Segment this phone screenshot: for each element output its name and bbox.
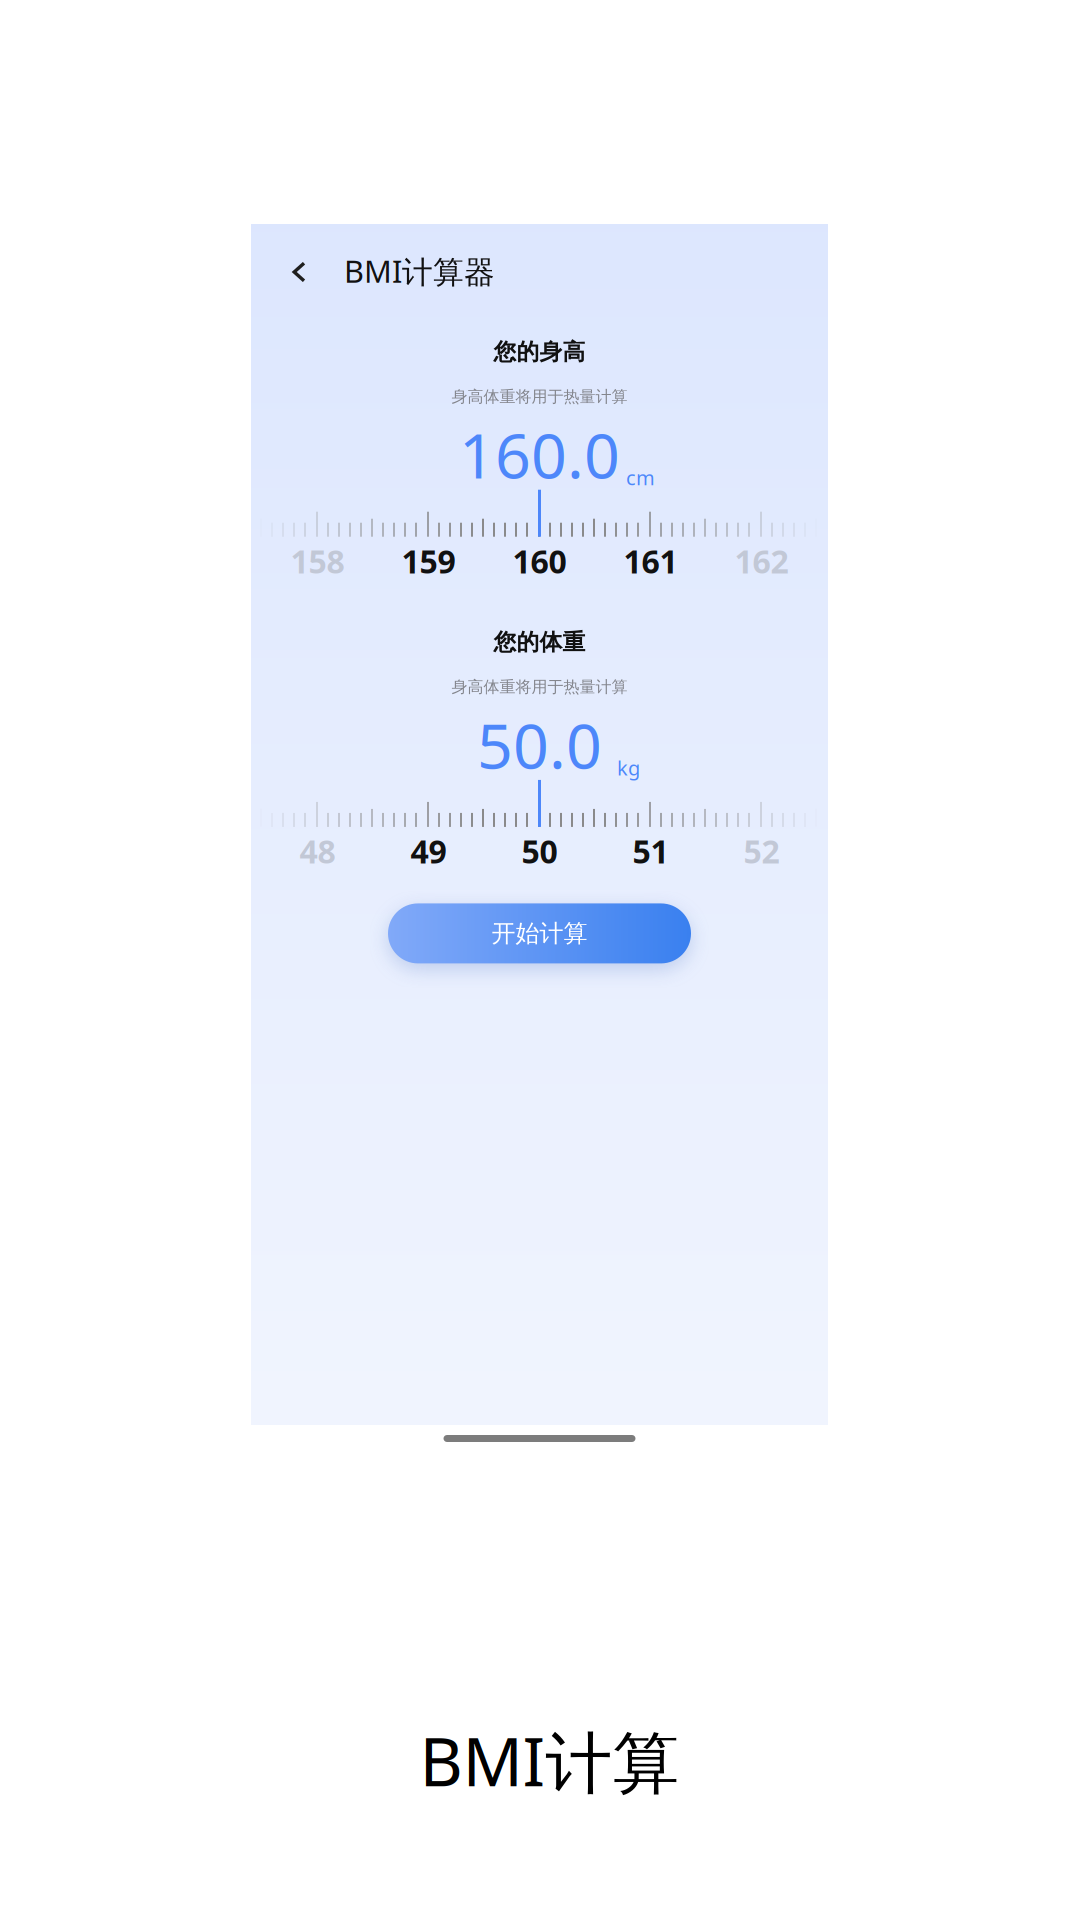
- staticText: 160: [512, 540, 566, 582]
- staticText: 您的体重: [493, 628, 585, 656]
- staticText: 51: [632, 830, 668, 872]
- staticText: BMI计算器: [344, 251, 495, 291]
- staticText: 162: [734, 540, 788, 582]
- staticText: 158: [290, 540, 344, 582]
- staticText: BMI计算: [419, 1716, 679, 1805]
- staticText: 您的身高: [493, 338, 585, 366]
- staticText: 161: [623, 540, 677, 582]
- staticText: 52: [743, 830, 779, 872]
- staticText: 49: [410, 830, 446, 872]
- button[interactable]: Back: [271, 243, 327, 299]
- staticText: 160.0: [459, 412, 620, 496]
- staticText: 50: [521, 830, 557, 872]
- staticText: 身高体重将用于热量计算: [451, 387, 627, 406]
- staticText: 48: [299, 830, 335, 872]
- staticText: cm: [626, 464, 655, 491]
- staticText: 身高体重将用于热量计算: [451, 677, 627, 697]
- button[interactable]: 开始计算: [388, 903, 691, 963]
- staticText: 50.0: [477, 703, 602, 786]
- staticText: kg: [617, 754, 640, 781]
- staticText: 159: [401, 540, 455, 582]
- staticText: 开始计算: [491, 919, 587, 948]
